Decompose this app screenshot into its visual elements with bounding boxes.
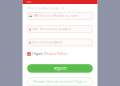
button[interactable]: Privacy Policy bbox=[44, 52, 67, 56]
staticText: Add Your/create password bbox=[32, 27, 71, 31]
staticText: Re-Confirm password bbox=[32, 41, 62, 44]
staticText: Privacy Policy bbox=[44, 52, 67, 56]
button[interactable]: I Agree checkbox bbox=[27, 52, 31, 56]
button[interactable]: +91 bbox=[27, 12, 93, 19]
button[interactable]: Already have an account ? Sign in bbox=[27, 78, 93, 86]
staticText: Put your Mobile no. here bbox=[39, 14, 78, 18]
button[interactable]: Register bbox=[27, 64, 93, 73]
staticText: +91 bbox=[33, 14, 38, 18]
staticText: Phone number format : 91 bbox=[27, 7, 65, 10]
button[interactable]: Re-Confirm password bbox=[27, 39, 93, 46]
staticText: I Agree bbox=[32, 52, 43, 56]
button[interactable]: Add Your/create password bbox=[27, 26, 93, 33]
staticText: Already have an account ? Sign in bbox=[33, 80, 87, 83]
staticText: Register bbox=[53, 66, 66, 71]
